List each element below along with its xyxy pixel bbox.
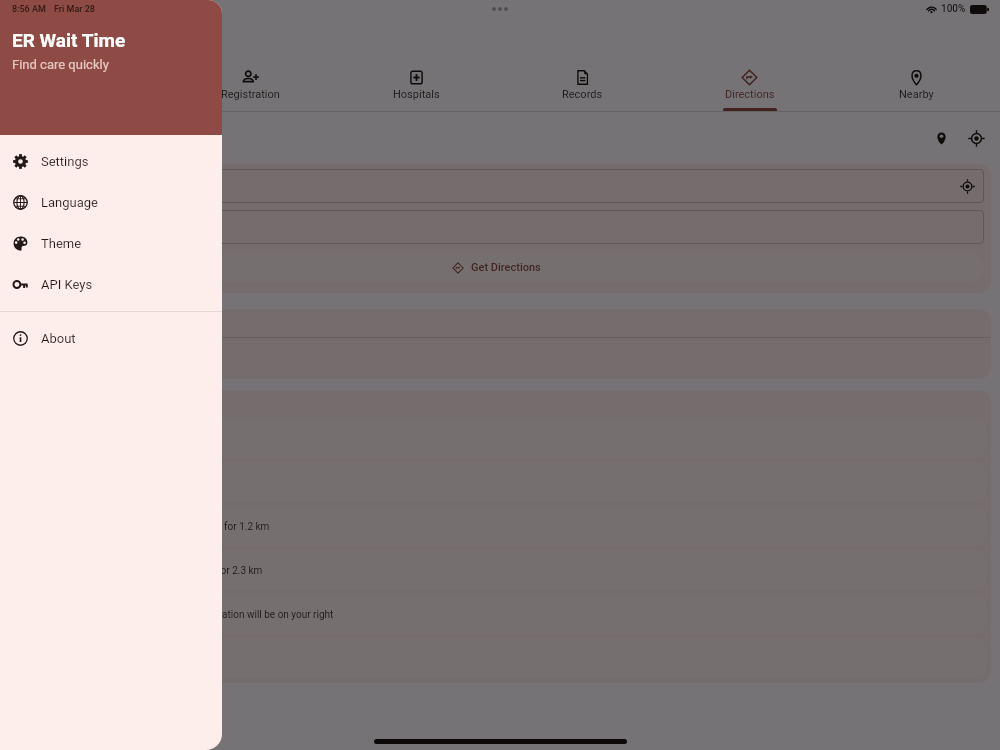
button[interactable]	[174, 210, 984, 244]
staticText: Your destination will be on your right	[172, 609, 334, 621]
button[interactable]: Settings	[0, 141, 222, 182]
staticText: Settings	[41, 154, 89, 169]
button[interactable]	[174, 169, 984, 203]
staticText: Records	[562, 88, 603, 101]
button[interactable]: Hospitals	[333, 18, 499, 111]
staticText: Get Directions	[471, 261, 541, 274]
button[interactable]: My location	[961, 123, 991, 153]
button[interactable]: API Keys	[0, 264, 222, 305]
button[interactable]: Directions	[666, 18, 833, 111]
staticText: Nearby	[899, 88, 934, 101]
staticText: Fri Mar 28	[56, 3, 102, 15]
button[interactable]: Language	[0, 182, 222, 223]
button[interactable]	[172, 463, 986, 502]
staticText: Directions	[725, 88, 775, 101]
button[interactable]: Turn right for 2.3 km	[172, 551, 986, 590]
staticText: 100%	[941, 3, 966, 15]
staticText: Find care quickly	[12, 57, 109, 72]
staticText: API Keys	[41, 277, 93, 292]
button[interactable]	[172, 639, 986, 678]
button[interactable]: Your destination will be on your right	[172, 595, 986, 634]
staticText: Theme	[41, 236, 82, 251]
button[interactable]: Nearby	[833, 18, 1000, 111]
staticText: Registration	[221, 88, 280, 101]
staticText: About	[41, 331, 76, 346]
staticText: Language	[41, 195, 98, 210]
button[interactable]	[172, 419, 986, 458]
button[interactable]: Records	[499, 18, 666, 111]
staticText: Hospitals	[393, 88, 440, 101]
button[interactable]: Get Directions	[174, 253, 984, 282]
button[interactable]: Head north for 1.2 km	[172, 507, 986, 546]
staticText: ER Wait Time	[12, 29, 126, 51]
staticText: Turn right for 2.3 km	[172, 565, 263, 577]
staticText: 8:56 AM	[12, 4, 46, 15]
staticText: Head north for 1.2 km	[172, 521, 270, 533]
button[interactable]: Theme	[0, 223, 222, 264]
button[interactable]: Saved places	[926, 123, 956, 153]
staticText: Fri Mar 28	[54, 4, 95, 15]
staticText: 8:56 AM	[10, 3, 48, 15]
button[interactable]: Registration	[167, 18, 333, 111]
button[interactable]: About	[0, 318, 222, 359]
